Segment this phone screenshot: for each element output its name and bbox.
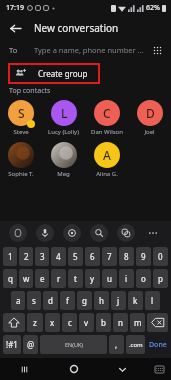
button[interactable]: u — [102, 269, 117, 288]
button[interactable]: Shift — [3, 313, 25, 332]
button[interactable]: j — [111, 291, 126, 310]
button[interactable]: 5 — [68, 247, 83, 266]
button[interactable]: L — [42, 100, 85, 136]
button[interactable]: y — [85, 269, 100, 288]
button[interactable]: g — [77, 291, 92, 310]
staticText: C — [103, 105, 111, 121]
button[interactable]: b — [96, 313, 111, 332]
staticText: z — [33, 317, 37, 328]
button[interactable]: s — [27, 291, 41, 310]
button[interactable]: 7 — [102, 247, 117, 266]
staticText: r — [57, 273, 61, 284]
staticText: !#1 — [6, 339, 18, 350]
button[interactable]: Hide keyboard — [98, 358, 147, 380]
staticText: x — [50, 317, 55, 328]
staticText: Steve — [13, 128, 29, 136]
button[interactable]: h — [94, 291, 109, 310]
button[interactable]: A — [85, 142, 128, 178]
staticText: i — [125, 273, 128, 284]
button[interactable]: More options — [144, 224, 162, 242]
button[interactable]: S — [0, 100, 42, 136]
staticText: 0 — [158, 251, 163, 262]
button[interactable]: 8 — [119, 247, 134, 266]
staticText: Create group — [38, 68, 88, 79]
staticText: q — [8, 273, 13, 284]
staticText: New conversation — [34, 21, 119, 35]
staticText: EN(UK) — [65, 341, 83, 348]
button[interactable]: 0 — [153, 247, 168, 266]
button[interactable]: r — [51, 269, 66, 288]
button[interactable]: i — [119, 269, 134, 288]
button[interactable]: .com — [126, 335, 145, 354]
staticText: c — [68, 317, 72, 328]
staticText: y — [90, 273, 95, 284]
button[interactable]: k — [128, 291, 143, 310]
button[interactable]: Dialpad — [147, 40, 167, 60]
button[interactable]: Settings — [63, 224, 81, 242]
button[interactable]: Meg — [42, 142, 85, 178]
staticText: f — [66, 295, 69, 306]
button[interactable]: Done — [147, 335, 168, 354]
staticText: 9 — [141, 251, 146, 262]
button[interactable]: , — [109, 335, 124, 354]
button[interactable]: m — [130, 313, 145, 332]
button[interactable]: 4 — [51, 247, 66, 266]
staticText: , — [115, 339, 118, 350]
button[interactable]: z — [27, 313, 43, 332]
staticText: t — [74, 273, 77, 284]
button[interactable]: @ — [23, 335, 38, 354]
button[interactable]: !#1 — [3, 335, 21, 354]
staticText: o — [141, 273, 146, 284]
button[interactable]: c — [62, 313, 77, 332]
button[interactable]: w — [19, 269, 33, 288]
staticText: 1 — [8, 251, 13, 262]
staticText: Lucy (Lolly) — [48, 128, 79, 136]
staticText: m — [134, 317, 142, 328]
staticText: 62% — [146, 3, 160, 13]
staticText: j — [117, 295, 120, 306]
button[interactable]: Sophie T. — [0, 142, 42, 178]
button[interactable]: t — [68, 269, 83, 288]
button[interactable]: n — [113, 313, 128, 332]
button[interactable]: Search — [90, 224, 108, 242]
button[interactable]: Create group — [8, 63, 100, 84]
staticText: Top contacts — [9, 86, 51, 96]
button[interactable]: f — [60, 291, 75, 310]
button[interactable]: 6 — [85, 247, 100, 266]
staticText: 17:19 — [6, 3, 24, 13]
button[interactable]: v — [79, 313, 94, 332]
staticText: 4 — [56, 251, 61, 262]
button[interactable]: p — [153, 269, 168, 288]
button[interactable]: l — [145, 291, 160, 310]
button[interactable]: Voice input — [36, 224, 54, 242]
button[interactable]: D — [128, 100, 171, 136]
staticText: n — [118, 317, 123, 328]
staticText: k — [133, 295, 138, 306]
button[interactable]: Home — [49, 358, 98, 380]
staticText: 6 — [90, 251, 95, 262]
button[interactable]: Recents — [0, 358, 49, 380]
button[interactable]: d — [43, 291, 58, 310]
staticText: Dan Wilson — [91, 128, 123, 136]
button[interactable]: Translate — [117, 224, 135, 242]
button[interactable]: Back — [4, 17, 26, 39]
button[interactable]: 3 — [35, 247, 49, 266]
button[interactable]: C — [85, 100, 128, 136]
button[interactable]: 1 — [3, 247, 17, 266]
button[interactable]: Keyboard layout — [147, 358, 171, 380]
staticText: D — [146, 105, 155, 121]
staticText: a — [16, 295, 21, 306]
staticText: e — [40, 273, 45, 284]
button[interactable]: o — [136, 269, 151, 288]
staticText: 8 — [124, 251, 129, 262]
button[interactable]: Stickers — [9, 224, 27, 242]
button[interactable]: EN(UK) — [40, 335, 107, 354]
button[interactable]: a — [11, 291, 25, 310]
button[interactable]: 2 — [19, 247, 33, 266]
button[interactable]: Backspace — [147, 313, 168, 332]
button[interactable]: 9 — [136, 247, 151, 266]
staticText: g — [82, 295, 87, 306]
button[interactable]: x — [45, 313, 60, 332]
button[interactable]: e — [35, 269, 49, 288]
button[interactable]: q — [3, 269, 17, 288]
